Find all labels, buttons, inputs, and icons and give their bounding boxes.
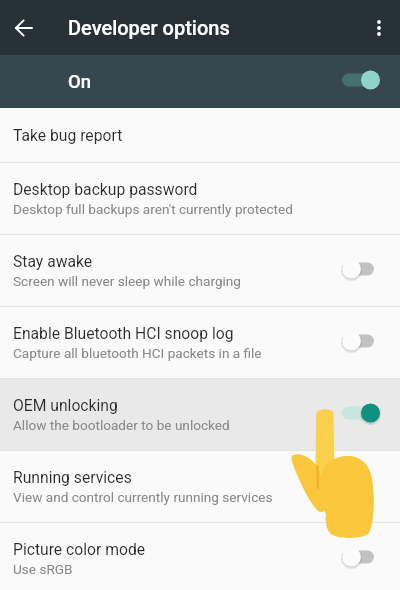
staticText: Desktop full backups aren't currently pr… xyxy=(13,201,293,217)
button[interactable]: Picture color mode xyxy=(0,523,400,590)
button[interactable]: Running services xyxy=(0,451,400,522)
staticText: View and control currently running servi… xyxy=(13,489,273,505)
staticText: Stay awake xyxy=(13,252,93,270)
staticText: Capture all bluetooth HCI packets in a f… xyxy=(13,345,262,361)
button[interactable]: Navigate up xyxy=(0,0,46,55)
button[interactable]: Stay awake xyxy=(0,235,400,306)
button[interactable]: Take bug report xyxy=(0,108,400,162)
staticText: Take bug report xyxy=(13,126,123,144)
other: Tap here xyxy=(290,406,380,538)
staticText: OEM unlocking xyxy=(13,396,118,414)
staticText: Desktop backup password xyxy=(13,180,198,198)
staticText: Allow the bootloader to be unlocked xyxy=(13,417,230,433)
staticText: Running services xyxy=(13,468,132,486)
button[interactable]: Enable Bluetooth HCI snoop log xyxy=(0,307,400,378)
staticText: On xyxy=(68,71,92,93)
staticText: Screen will never sleep while charging xyxy=(13,273,241,289)
staticText: Use sRGB xyxy=(13,561,73,577)
staticText: Enable Bluetooth HCI snoop log xyxy=(13,324,234,342)
button[interactable]: Desktop backup password xyxy=(0,163,400,234)
button[interactable]: On xyxy=(0,55,400,108)
staticText: Developer options xyxy=(68,16,230,39)
button[interactable]: OEM unlocking xyxy=(0,379,400,450)
button[interactable]: More options xyxy=(358,0,400,55)
staticText: Picture color mode xyxy=(13,540,146,558)
